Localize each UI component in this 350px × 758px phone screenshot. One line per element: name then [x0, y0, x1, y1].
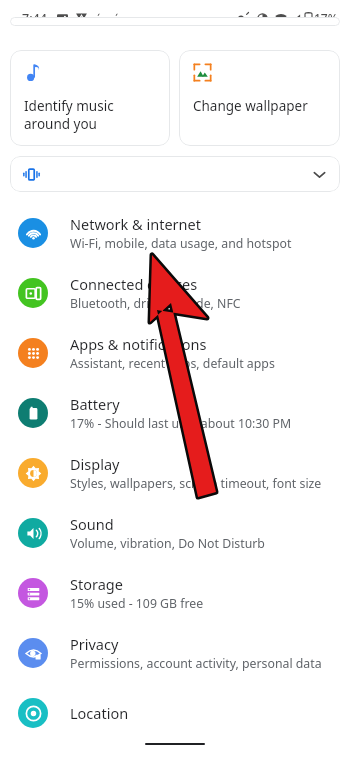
button[interactable]: Identify music around you [10, 50, 170, 146]
button[interactable]: Vibration settings, expand [10, 156, 340, 192]
staticText: Display [70, 454, 120, 474]
button[interactable]: Connected devices [0, 263, 350, 323]
staticText: Apps & notifications [70, 334, 207, 354]
staticText: Styles, wallpapers, screen timeout, font… [70, 475, 322, 492]
button[interactable]: Display [0, 443, 350, 503]
staticText: Privacy [70, 634, 119, 654]
staticText: Network & internet [70, 214, 201, 234]
button[interactable]: Battery [0, 383, 350, 443]
staticText: Permissions, account activity, personal … [70, 655, 322, 672]
button[interactable]: Apps & notifications [0, 323, 350, 383]
button[interactable]: Privacy [0, 623, 350, 683]
staticText: Volume, vibration, Do Not Disturb [70, 535, 265, 552]
button[interactable]: Location [0, 683, 350, 743]
staticText: Storage [70, 574, 123, 594]
button[interactable]: Storage [0, 563, 350, 623]
staticText: 7:44 [22, 10, 47, 27]
staticText: Wi-Fi, mobile, data usage, and hotspot [70, 235, 292, 252]
button[interactable]: Sound [0, 503, 350, 563]
staticText: Bluetooth, driving mode, NFC [70, 295, 241, 312]
button[interactable]: Network & internet [0, 203, 350, 263]
staticText: Location [70, 703, 129, 723]
staticText: Identify music around you [24, 97, 114, 133]
staticText: Battery [70, 394, 120, 414]
staticText: 17% - Should last until about 10:30 PM [70, 415, 292, 432]
staticText: Sound [70, 514, 114, 534]
staticText: 15% used - 109 GB free [70, 595, 204, 612]
staticText: Change wallpaper [193, 97, 308, 115]
button[interactable]: Change wallpaper [179, 50, 340, 146]
staticText: Assistant, recent apps, default apps [70, 355, 275, 372]
staticText: 17% [314, 10, 338, 26]
staticText: Connected devices [70, 274, 198, 294]
